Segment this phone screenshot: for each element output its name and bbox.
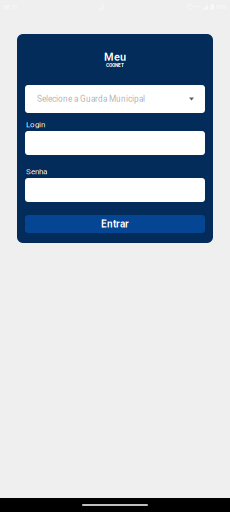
button[interactable]: Selecione a Guarda Municipal <box>25 85 205 113</box>
staticText: Login <box>26 120 45 129</box>
staticText: Senha <box>26 167 47 176</box>
staticText: Selecione a Guarda Municipal <box>37 94 145 104</box>
staticText: Meu <box>104 51 126 63</box>
button[interactable]: Entrar <box>25 215 205 233</box>
staticText: Entrar <box>101 218 129 230</box>
staticText: COONET <box>106 62 124 68</box>
